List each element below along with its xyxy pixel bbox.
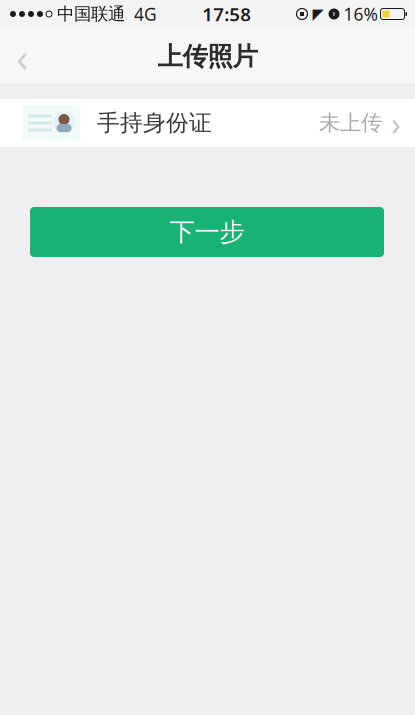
- staticText: ‹: [16, 30, 28, 83]
- staticText: 4G: [134, 2, 157, 25]
- staticText: 16%: [343, 2, 377, 25]
- staticText: ›: [391, 102, 401, 144]
- staticText: ◤: [312, 6, 323, 22]
- staticText: 上传照片: [157, 41, 257, 72]
- button[interactable]: 返回: [0, 28, 44, 85]
- button[interactable]: 手持身份证: [0, 98, 415, 148]
- button[interactable]: 下一步: [30, 207, 384, 257]
- staticText: 17:58: [202, 2, 251, 26]
- staticText: 手持身份证: [97, 109, 212, 137]
- staticText: 中国联通: [57, 3, 125, 25]
- staticText: 下一步: [169, 216, 244, 247]
- staticText: 未上传: [319, 110, 382, 136]
